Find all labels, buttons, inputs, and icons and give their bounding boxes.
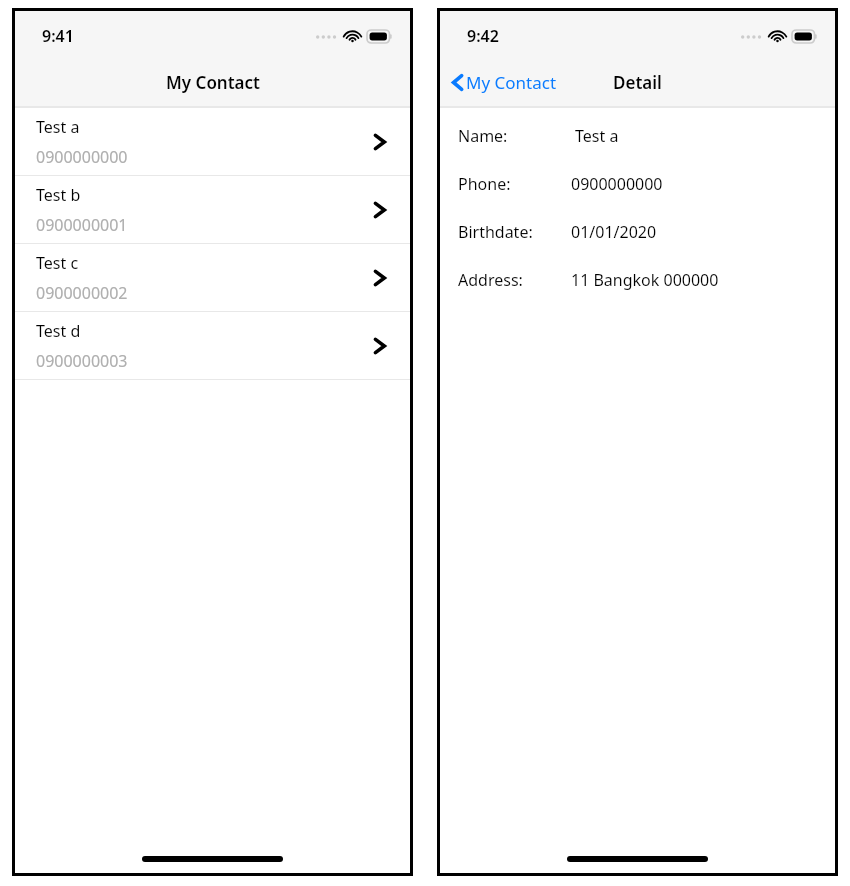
staticText: Test a [575, 125, 619, 147]
staticText: 9:42 [467, 25, 499, 47]
staticText: Test c [36, 252, 79, 274]
staticText: Birthdate: [458, 221, 571, 243]
button[interactable]: Test d [15, 312, 410, 379]
button[interactable]: Test c [15, 244, 410, 311]
staticText: Test d [36, 320, 81, 342]
staticText: Detail [613, 71, 662, 94]
staticText: Test b [36, 184, 81, 206]
staticText: Phone: [458, 173, 571, 195]
staticText: 0900000000 [571, 173, 663, 195]
staticText: My Contact [166, 71, 260, 94]
staticText: 0900000000 [36, 146, 128, 168]
button[interactable]: Test a [15, 108, 410, 175]
other: Back [452, 73, 463, 92]
staticText: My Contact [466, 71, 557, 94]
staticText: 01/01/2020 [571, 221, 657, 243]
staticText: Address: [458, 269, 571, 291]
staticText: 0900000001 [36, 214, 128, 236]
staticText: 0900000003 [36, 350, 128, 372]
staticText: 11 Bangkok 000000 [571, 269, 719, 291]
button[interactable]: Test b [15, 176, 410, 243]
staticText: 0900000002 [36, 282, 128, 304]
staticText: Name: [458, 125, 571, 147]
staticText: 9:41 [42, 25, 74, 47]
staticText: Test a [36, 116, 80, 138]
button[interactable]: Back [440, 65, 565, 100]
